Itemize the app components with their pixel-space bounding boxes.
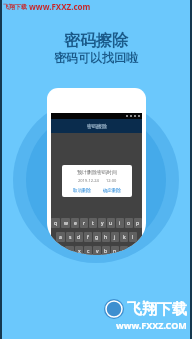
button[interactable]: z xyxy=(65,246,74,255)
staticText: 飞翔下载 xyxy=(3,3,27,11)
staticText: t xyxy=(92,220,94,227)
staticText: w xyxy=(64,220,68,227)
button[interactable]: t xyxy=(89,218,97,228)
staticText: v xyxy=(96,248,99,255)
button[interactable]: s xyxy=(66,232,74,242)
button[interactable]: r xyxy=(80,218,88,228)
staticText: www.FXXZ.COM xyxy=(116,319,187,331)
button[interactable]: g xyxy=(93,232,101,242)
staticText: h xyxy=(104,234,108,241)
button[interactable]: f xyxy=(84,232,92,242)
staticText: j xyxy=(114,234,116,241)
staticText: n xyxy=(113,248,117,255)
staticText: i xyxy=(119,220,121,227)
staticText: 密码擦除 xyxy=(64,31,128,51)
button[interactable]: u xyxy=(107,218,115,228)
staticText: c xyxy=(87,248,90,255)
button[interactable]: e xyxy=(71,218,79,228)
button[interactable]: c xyxy=(84,246,92,255)
staticText: 确定删除 xyxy=(103,188,121,194)
staticText: x xyxy=(78,248,81,255)
staticText: b xyxy=(104,248,108,255)
button[interactable]: k xyxy=(120,232,128,242)
button[interactable]: b xyxy=(102,246,110,255)
staticText: z xyxy=(68,248,71,255)
button[interactable]: d xyxy=(75,232,83,242)
button[interactable]: m xyxy=(120,246,128,255)
button[interactable]: j xyxy=(111,232,119,242)
button[interactable]: h xyxy=(102,232,110,242)
button[interactable]: w xyxy=(61,218,70,228)
button[interactable]: o xyxy=(125,218,133,228)
staticText: d xyxy=(77,234,81,241)
staticText: 12:00 xyxy=(106,178,117,183)
staticText: k xyxy=(123,234,126,241)
staticText: g xyxy=(95,234,99,241)
staticText: s xyxy=(69,234,72,241)
button[interactable]: y xyxy=(98,218,106,228)
button[interactable]: n xyxy=(111,246,119,255)
staticText: m xyxy=(122,248,127,255)
staticText: 预计删除密码时间 xyxy=(77,169,117,175)
staticText: 密码可以找回啦 xyxy=(54,50,138,65)
staticText: www.FXXZ.com xyxy=(29,1,91,12)
button[interactable]: 取消删除 xyxy=(73,188,91,194)
button[interactable]: i xyxy=(116,218,124,228)
staticText: p xyxy=(136,220,140,227)
staticText: 取消删除 xyxy=(73,188,91,194)
staticText: 密码擦除 xyxy=(87,123,107,129)
staticText: a xyxy=(59,234,62,241)
button[interactable]: l xyxy=(129,232,137,242)
button[interactable]: 确定删除 xyxy=(103,188,121,194)
staticText: e xyxy=(74,220,77,227)
staticText: u xyxy=(109,220,113,227)
staticText: 飞翔下载 xyxy=(127,300,187,319)
staticText: l xyxy=(132,234,134,241)
staticText: y xyxy=(101,220,104,227)
staticText: q xyxy=(54,220,58,227)
staticText: f xyxy=(87,234,89,241)
button[interactable]: a xyxy=(56,232,65,242)
button[interactable]: q xyxy=(51,218,60,228)
button[interactable]: v xyxy=(93,246,101,255)
staticText: r xyxy=(83,220,86,227)
button[interactable]: x xyxy=(75,246,83,255)
staticText: o xyxy=(127,220,131,227)
staticText: 2019-12-24 xyxy=(78,178,99,183)
button[interactable]: p xyxy=(134,218,142,228)
